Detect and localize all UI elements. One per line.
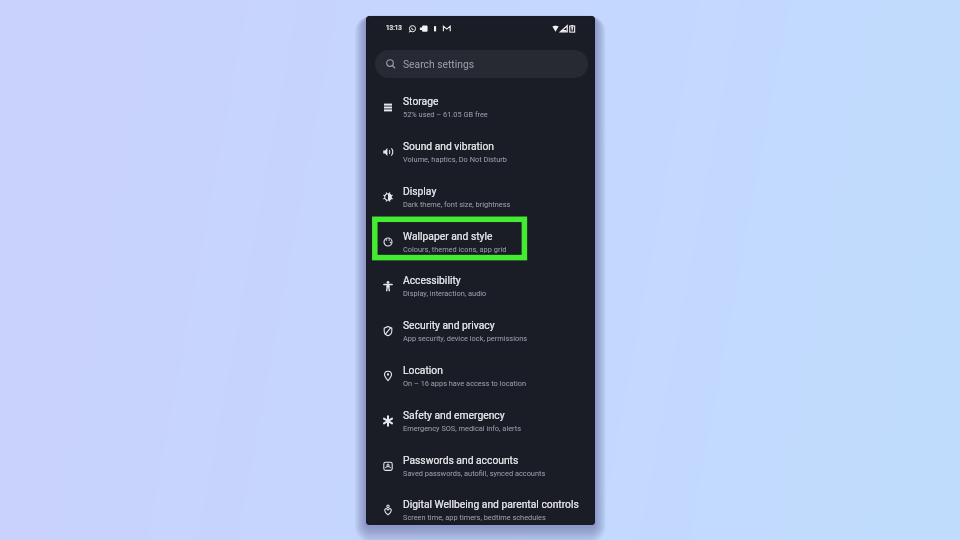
button[interactable]: Storage — [366, 85, 595, 130]
staticText: Storage — [403, 95, 439, 107]
staticText: Display — [403, 185, 437, 197]
button[interactable]: Wallpaper and style — [366, 220, 595, 265]
staticText: Sound and vibration — [403, 140, 494, 152]
staticText: Security and privacy — [403, 319, 495, 331]
staticText: Volume, haptics, Do Not Disturb — [403, 155, 507, 164]
button[interactable]: Safety and emergency — [366, 399, 595, 444]
staticText: 13:13 — [386, 24, 402, 32]
button[interactable]: Security and privacy — [366, 309, 595, 354]
staticText: Saved passwords, autofill, synced accoun… — [403, 469, 546, 478]
button[interactable]: Passwords and accounts — [366, 444, 595, 489]
staticText: 52% used – 61.05 GB free — [403, 110, 488, 119]
staticText: Digital Wellbeing and parental controls — [403, 498, 579, 510]
staticText: Wallpaper and style — [403, 230, 493, 242]
button[interactable]: Search settings — [375, 50, 588, 78]
button[interactable]: Display — [366, 175, 595, 220]
button[interactable]: Digital Wellbeing and parental controls — [366, 488, 595, 525]
staticText: Display, interaction, audio — [403, 289, 487, 298]
staticText: Dark theme, font size, brightness — [403, 200, 511, 209]
staticText: Accessibility — [403, 274, 461, 286]
staticText: Screen time, app timers, bedtime schedul… — [403, 513, 546, 522]
staticText: Search settings — [403, 58, 474, 70]
staticText: App security, device lock, permissions — [403, 334, 528, 343]
staticText: Safety and emergency — [403, 409, 505, 421]
button[interactable]: Location — [366, 354, 595, 399]
button[interactable]: Sound and vibration — [366, 130, 595, 175]
staticText: Passwords and accounts — [403, 454, 519, 466]
staticText: Emergency SOS, medical info, alerts — [403, 424, 522, 433]
staticText: Location — [403, 364, 443, 376]
staticText: Colours, themed icons, app grid — [403, 245, 507, 254]
button[interactable]: Accessibility — [366, 264, 595, 309]
staticText: On – 16 apps have access to location — [403, 379, 527, 388]
